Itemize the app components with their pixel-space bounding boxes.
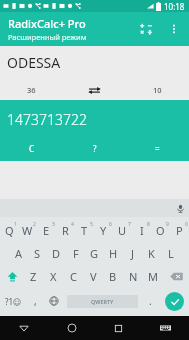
staticText: Расширенный режим — [8, 32, 87, 42]
staticText: D — [52, 246, 61, 261]
button[interactable]: B — [103, 267, 123, 286]
button[interactable]: Q — [0, 221, 18, 240]
button[interactable]: P — [170, 221, 189, 240]
staticText: Y — [100, 223, 107, 238]
staticText: A — [15, 246, 23, 261]
staticText: R — [62, 223, 69, 238]
button[interactable]: = — [126, 137, 189, 159]
button[interactable]: R — [56, 221, 75, 240]
staticText: M — [148, 269, 158, 284]
button[interactable]: Y — [94, 221, 113, 240]
button[interactable]: E — [37, 221, 56, 240]
staticText: X — [50, 269, 57, 284]
button[interactable]: N — [123, 267, 143, 286]
button[interactable]: Shift — [0, 267, 24, 286]
button[interactable]: G — [85, 244, 104, 263]
button[interactable]: A — [9, 244, 28, 263]
staticText: 1473713722 — [7, 110, 87, 129]
staticText: 5 — [90, 221, 93, 228]
staticText: C — [29, 143, 35, 154]
staticText: 9 — [166, 221, 169, 228]
staticText: G — [90, 246, 99, 261]
staticText: S — [34, 246, 41, 261]
staticText: N — [129, 269, 138, 284]
button[interactable]: Keyboard — [142, 316, 189, 340]
button[interactable]: S — [28, 244, 47, 263]
button[interactable]: Home — [48, 316, 95, 340]
button[interactable]: I — [132, 221, 151, 240]
staticText: Z — [30, 269, 37, 284]
staticText: U — [118, 223, 127, 238]
staticText: E — [43, 223, 50, 238]
staticText: ? — [93, 143, 97, 154]
button[interactable]: J — [123, 244, 142, 263]
button[interactable]: T — [75, 221, 94, 240]
staticText: , — [34, 294, 37, 308]
staticText: RadixCalc+ Pro — [8, 16, 86, 31]
staticText: 6 — [109, 221, 112, 228]
button[interactable]: Operations — [131, 14, 161, 44]
staticText: J — [131, 246, 135, 261]
button[interactable]: L — [161, 244, 180, 263]
button[interactable]: U — [113, 221, 132, 240]
button[interactable]: QWERTY — [67, 295, 138, 308]
staticText: 1 — [14, 221, 17, 228]
button[interactable]: D — [47, 244, 66, 263]
staticText: O — [156, 223, 165, 238]
staticText: 2 — [33, 221, 36, 228]
button[interactable]: H — [104, 244, 123, 263]
button[interactable]: V — [83, 267, 103, 286]
staticText: Q — [5, 223, 14, 238]
staticText: 3 — [52, 221, 55, 228]
button[interactable]: C — [63, 267, 83, 286]
staticText: B — [109, 269, 117, 284]
staticText: = — [155, 143, 160, 154]
staticText: F — [73, 246, 79, 261]
staticText: T — [81, 223, 88, 238]
button[interactable]: Swap bases — [63, 83, 126, 97]
staticText: H — [109, 246, 118, 261]
staticText: V — [90, 269, 97, 284]
staticText: 4 — [71, 221, 74, 228]
button[interactable]: 36 — [0, 83, 63, 97]
staticText: 10 — [153, 85, 162, 95]
button[interactable]: Change language — [44, 289, 64, 313]
button[interactable]: Recent apps — [95, 316, 142, 340]
button[interactable]: W — [18, 221, 37, 240]
button[interactable]: 10 — [126, 83, 189, 97]
button[interactable]: More options — [161, 16, 187, 42]
staticText: ODESSA — [7, 53, 61, 72]
staticText: 10:18 — [164, 1, 185, 12]
button[interactable]: X — [43, 267, 63, 286]
button[interactable]: K — [142, 244, 161, 263]
staticText: 36 — [27, 85, 36, 95]
button[interactable]: C — [0, 137, 63, 159]
button[interactable]: Backspace — [163, 267, 189, 286]
button[interactable]: O — [151, 221, 170, 240]
staticText: I — [140, 223, 144, 238]
button[interactable]: Enter — [159, 289, 189, 313]
button[interactable]: , — [26, 289, 44, 313]
staticText: 7 — [128, 221, 131, 228]
staticText: QWERTY — [91, 298, 114, 305]
staticText: L — [168, 246, 174, 261]
staticText: . — [149, 294, 152, 308]
button[interactable]: Z — [24, 267, 43, 286]
staticText: 0 — [185, 221, 188, 228]
staticText: P — [176, 223, 183, 238]
button[interactable]: M — [143, 267, 163, 286]
button[interactable]: Voice input — [171, 199, 189, 217]
staticText: 8 — [147, 221, 150, 228]
staticText: ?1☺ — [5, 296, 22, 307]
button[interactable]: ? — [63, 137, 126, 159]
button[interactable]: F — [66, 244, 85, 263]
button[interactable]: . — [141, 289, 159, 313]
button[interactable]: Back — [0, 316, 48, 340]
staticText: K — [148, 246, 155, 261]
staticText: W — [22, 223, 33, 238]
button[interactable]: ?1☺ — [0, 289, 26, 313]
staticText: C — [70, 269, 77, 284]
